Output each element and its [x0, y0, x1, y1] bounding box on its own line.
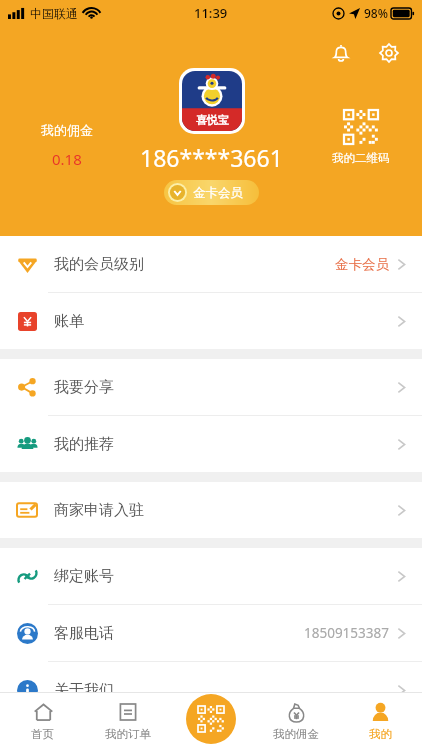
- staticText: 我的二维码: [332, 151, 390, 165]
- staticText: 我的订单: [105, 727, 151, 741]
- staticText: 客服电话: [54, 624, 114, 643]
- staticText: 金卡会员: [335, 256, 389, 273]
- button[interactable]: 账单: [0, 293, 422, 349]
- button[interactable]: 客服电话: [0, 605, 422, 662]
- staticText: 商家申请入驻: [54, 501, 144, 520]
- button[interactable]: Scan QR code: [186, 694, 236, 744]
- button[interactable]: 我的佣金: [22, 122, 112, 169]
- button[interactable]: Notifications: [324, 36, 358, 70]
- button[interactable]: 我的会员级别: [0, 236, 422, 293]
- staticText: 18509153387: [304, 624, 389, 642]
- staticText: 金卡会员: [193, 185, 243, 201]
- button[interactable]: 我的二维码: [318, 110, 404, 165]
- staticText: 喜悦宝: [196, 113, 229, 127]
- button[interactable]: 我的推荐: [0, 416, 422, 472]
- button[interactable]: 我的订单: [85, 692, 170, 750]
- staticText: 关于我们: [54, 681, 114, 700]
- button[interactable]: 我的佣金: [254, 692, 338, 750]
- button[interactable]: 我的: [338, 692, 422, 750]
- staticText: 0.18: [52, 149, 82, 169]
- button[interactable]: 关于我们: [0, 662, 422, 718]
- button[interactable]: 首页: [0, 692, 85, 750]
- staticText: 首页: [31, 727, 54, 741]
- button[interactable]: 绑定账号: [0, 548, 422, 605]
- button[interactable]: App logo: [179, 68, 245, 134]
- button[interactable]: 金卡会员: [164, 180, 259, 205]
- button[interactable]: 商家申请入驻: [0, 482, 422, 538]
- staticText: 我的佣金: [41, 122, 93, 138]
- staticText: 绑定账号: [54, 567, 114, 586]
- staticText: 我的佣金: [273, 727, 319, 741]
- staticText: 我的: [369, 727, 392, 741]
- staticText: 账单: [54, 312, 84, 331]
- button[interactable]: Settings: [372, 36, 406, 70]
- staticText: 我的会员级别: [54, 255, 144, 274]
- staticText: 11:39: [194, 4, 228, 22]
- button[interactable]: 我要分享: [0, 359, 422, 416]
- staticText: 中国联通: [30, 6, 78, 21]
- staticText: 186****3661: [140, 142, 283, 173]
- staticText: 98%: [364, 5, 388, 21]
- staticText: 我要分享: [54, 378, 114, 397]
- staticText: 我的推荐: [54, 435, 114, 454]
